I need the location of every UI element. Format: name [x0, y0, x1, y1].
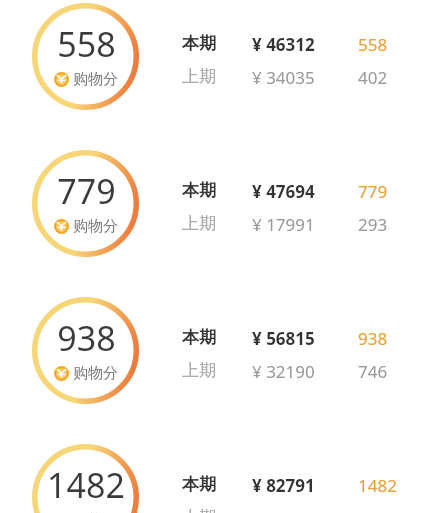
staticText: 上期 [182, 360, 216, 381]
staticText: 402 [358, 66, 388, 89]
staticText: 779 [57, 168, 116, 214]
staticText: 购物分 [73, 70, 118, 89]
staticText: 746 [358, 360, 388, 383]
staticText: ¥ 46312 [252, 33, 315, 56]
staticText: ¥ 82791 [252, 474, 315, 497]
staticText: 上期 [182, 213, 216, 234]
staticText: 558 [358, 33, 388, 56]
staticText: ¥ 32190 [252, 360, 315, 383]
staticText: 购物分 [73, 364, 118, 383]
staticText: ¥ 47694 [252, 180, 315, 203]
staticText: 购物分 [73, 217, 118, 236]
staticText: ¥ 56815 [252, 327, 315, 350]
staticText: 本期 [182, 474, 216, 495]
staticText: 1482 [358, 474, 397, 497]
staticText: 938 [57, 315, 116, 361]
staticText: 本期 [182, 180, 216, 201]
staticText: 上期 [182, 66, 216, 87]
staticText: ¥ 17991 [252, 213, 315, 236]
staticText: 上期 [182, 507, 216, 513]
staticText: 1482 [47, 462, 125, 508]
button[interactable]: 558 [0, 3, 436, 113]
staticText: 558 [57, 21, 116, 67]
button[interactable]: 779 [0, 150, 436, 260]
button[interactable]: 938 [0, 297, 436, 407]
staticText: 938 [358, 327, 388, 350]
button[interactable]: 1482 [0, 444, 436, 513]
staticText: 779 [358, 180, 388, 203]
staticText: ¥ 34035 [252, 66, 315, 89]
staticText: 293 [358, 213, 388, 236]
staticText: 本期 [182, 327, 216, 348]
staticText: 本期 [182, 33, 216, 54]
